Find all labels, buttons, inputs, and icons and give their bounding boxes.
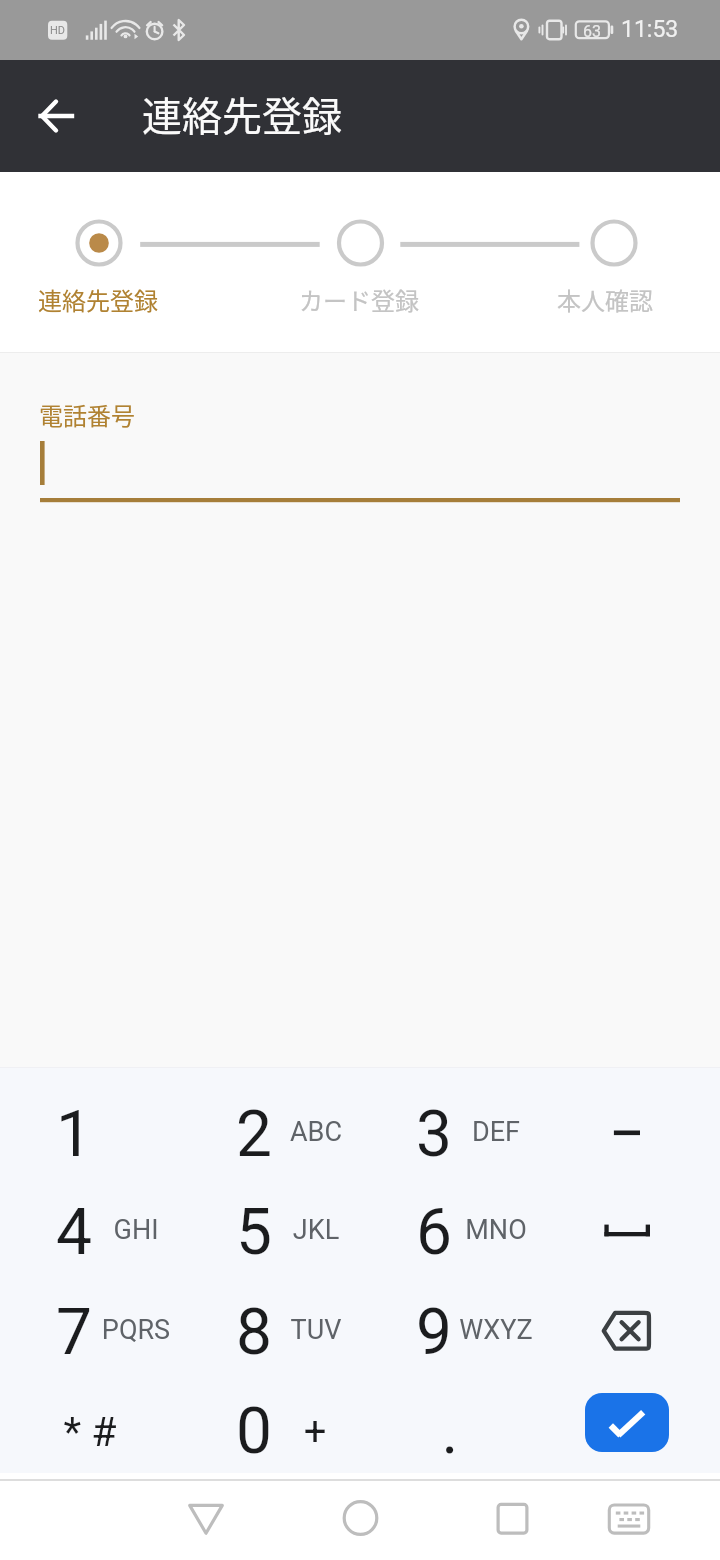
button[interactable]: Back (22, 86, 90, 146)
button[interactable]: 9 (360, 1270, 540, 1369)
button[interactable]: Backspace (540, 1270, 720, 1369)
button[interactable]: 1 (0, 1072, 180, 1171)
button[interactable]: Keyboard (569, 1473, 689, 1560)
staticText: TUV (271, 1314, 361, 1346)
button[interactable]: 2 (180, 1072, 360, 1171)
button[interactable]: Home (300, 1473, 421, 1560)
staticText: 電話番号 (39, 397, 135, 432)
staticText: ABC (271, 1116, 361, 1148)
button[interactable]: * # (0, 1369, 180, 1468)
button[interactable]: 5 (180, 1170, 360, 1269)
staticText: . (360, 1394, 540, 1469)
staticText: 連絡先登録 (38, 282, 158, 317)
staticText: 3 (415, 1097, 453, 1172)
button[interactable]: Confirm (540, 1369, 720, 1468)
button[interactable]: 7 (0, 1270, 180, 1369)
staticText: 11:53 (621, 16, 679, 43)
staticText: HD (46, 24, 69, 37)
staticText: 63 (578, 22, 606, 41)
staticText: DEF (451, 1116, 541, 1148)
staticText: 8 (235, 1295, 273, 1370)
staticText: 4 (55, 1195, 93, 1270)
staticText: MNO (451, 1214, 541, 1246)
button[interactable]: 8 (180, 1270, 360, 1369)
staticText: JKL (271, 1214, 361, 1246)
staticText: WXYZ (451, 1314, 541, 1346)
button[interactable]: 6 (360, 1170, 540, 1269)
button[interactable]: Back (146, 1473, 266, 1560)
button[interactable]: Recents (452, 1473, 573, 1560)
staticText: 9 (415, 1295, 453, 1370)
staticText: GHI (91, 1214, 181, 1246)
staticText: + (270, 1408, 360, 1455)
staticText: 連絡先登録 (142, 85, 342, 143)
staticText: 本人確認 (557, 282, 653, 317)
staticText: 1 (55, 1097, 93, 1172)
staticText: 2 (235, 1097, 273, 1172)
staticText: カード登録 (299, 282, 419, 317)
staticText: 5 (235, 1195, 273, 1270)
button[interactable]: 0 (180, 1369, 360, 1468)
button[interactable]: . (360, 1369, 540, 1468)
staticText: 7 (55, 1295, 93, 1370)
staticText: * # (0, 1408, 180, 1456)
button[interactable]: Space (540, 1170, 720, 1269)
staticText: PQRS (91, 1314, 181, 1346)
staticText: 6 (415, 1195, 453, 1270)
button[interactable]: 3 (360, 1072, 540, 1171)
button[interactable]: 4 (0, 1170, 180, 1269)
button[interactable]: Dash (540, 1072, 720, 1171)
staticText: 0 (235, 1394, 273, 1469)
